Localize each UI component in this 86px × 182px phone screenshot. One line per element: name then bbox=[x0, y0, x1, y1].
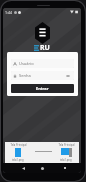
staticText: Entrar bbox=[36, 86, 49, 91]
button[interactable]: Entrar bbox=[11, 84, 74, 93]
button[interactable]: Home bbox=[37, 163, 48, 173]
staticText: Tela Principal bbox=[58, 143, 75, 147]
button[interactable]: Recents bbox=[59, 163, 70, 173]
button[interactable]: Back bbox=[18, 163, 29, 173]
staticText: 1:44 bbox=[5, 10, 12, 15]
staticText: Senha bbox=[19, 73, 31, 78]
other: Show password bbox=[66, 74, 70, 78]
button[interactable]: Usuário bbox=[11, 59, 74, 68]
staticText: Tela Principal bbox=[10, 143, 27, 147]
staticText: Usuário bbox=[19, 61, 34, 66]
staticText: RU bbox=[40, 43, 50, 53]
button[interactable]: Tela Principal bbox=[5, 142, 31, 163]
staticText: tela1.png bbox=[12, 158, 24, 162]
button[interactable]: Tela Principal bbox=[53, 142, 79, 163]
button[interactable]: Senha bbox=[11, 71, 74, 80]
other: E bbox=[34, 45, 39, 51]
staticText: tela1.png bbox=[60, 158, 72, 162]
